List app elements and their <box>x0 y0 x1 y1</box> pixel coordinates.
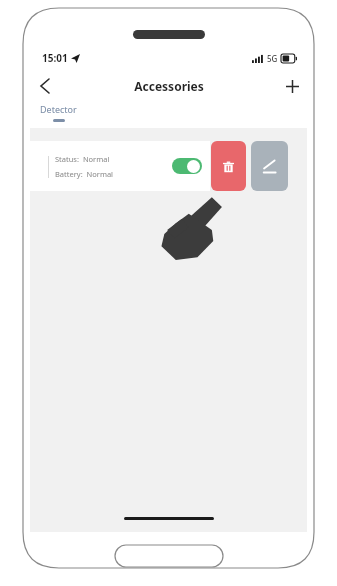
button[interactable]: Status: Normal <box>30 141 210 191</box>
staticText: 5G <box>267 53 278 64</box>
button[interactable]: Add accessory <box>277 71 307 101</box>
button[interactable]: Delete <box>211 141 246 191</box>
button[interactable]: Detector <box>38 103 79 122</box>
staticText: Battery: Normal <box>55 169 114 179</box>
button[interactable]: Edit <box>251 141 288 191</box>
staticText: Status: Normal <box>55 154 110 164</box>
button[interactable]: Back <box>30 71 60 101</box>
staticText: Accessories <box>134 78 204 94</box>
staticText: 15:01 <box>42 51 68 65</box>
button[interactable]: Power toggle <box>172 158 202 174</box>
staticText: Detector <box>40 103 77 115</box>
